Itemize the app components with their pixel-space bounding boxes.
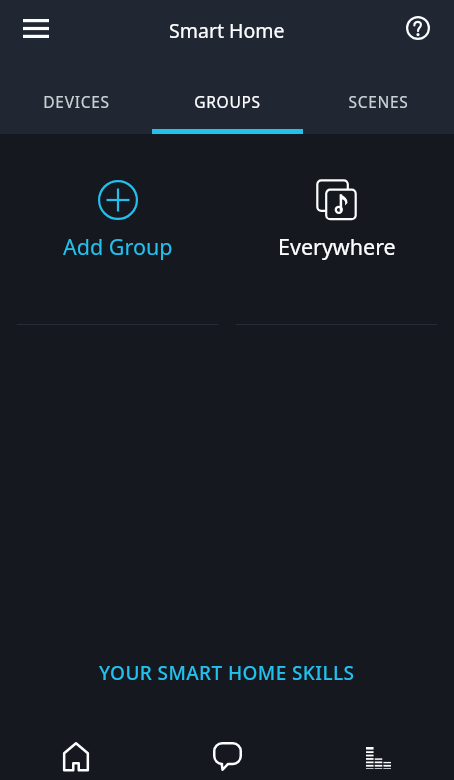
- button[interactable]: Activity: [303, 716, 454, 780]
- staticText: SCENES: [348, 91, 409, 112]
- button[interactable]: Help: [396, 6, 440, 50]
- staticText: GROUPS: [194, 91, 261, 112]
- staticText: YOUR SMART HOME SKILLS: [99, 660, 355, 686]
- staticText: DEVICES: [43, 91, 110, 112]
- button[interactable]: Everywhere: [227, 134, 446, 325]
- button[interactable]: YOUR SMART HOME SKILLS: [85, 652, 369, 694]
- staticText: Smart Home: [169, 17, 285, 44]
- button[interactable]: SCENES: [303, 76, 454, 134]
- button[interactable]: Home: [0, 716, 152, 780]
- button[interactable]: Add Group: [8, 134, 227, 325]
- button[interactable]: Menu: [12, 4, 60, 52]
- staticText: Add Group: [63, 232, 173, 261]
- button[interactable]: DEVICES: [0, 76, 152, 134]
- button[interactable]: Conversations: [152, 716, 303, 780]
- button[interactable]: GROUPS: [152, 76, 303, 134]
- staticText: Everywhere: [278, 232, 396, 261]
